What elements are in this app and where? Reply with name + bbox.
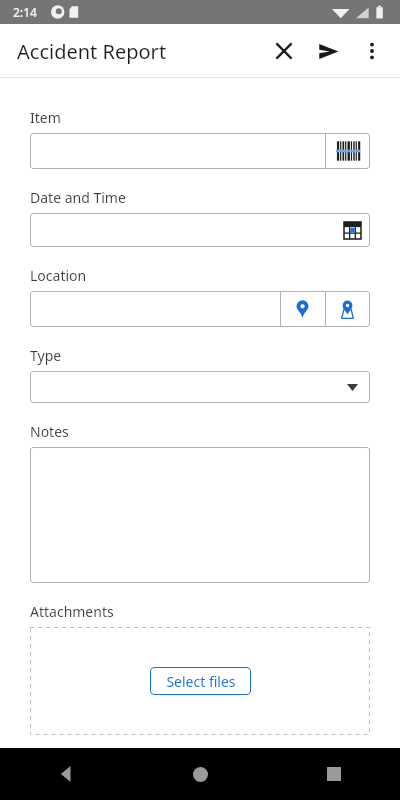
button[interactable]: Scan barcode	[325, 133, 370, 169]
staticText: Attachments	[30, 602, 114, 621]
button[interactable]	[30, 133, 325, 169]
staticText: Type	[30, 346, 62, 365]
button[interactable]: Send	[306, 29, 350, 73]
staticText: Date and Time	[30, 188, 126, 207]
staticText: Select files	[166, 672, 236, 691]
staticText: 2:14	[13, 4, 37, 20]
button[interactable]: Select files	[150, 667, 251, 695]
button[interactable]: Pick date and time	[30, 213, 370, 247]
staticText: Item	[30, 108, 61, 127]
button[interactable]: Home	[134, 748, 267, 800]
button[interactable]	[30, 291, 280, 327]
staticText: Notes	[30, 422, 69, 441]
button[interactable]: Back	[0, 748, 134, 800]
button[interactable]: Current location	[280, 291, 325, 327]
button[interactable]	[30, 371, 370, 403]
button[interactable]: Pick date and time	[343, 221, 361, 239]
button[interactable]: More options	[350, 29, 394, 73]
staticText: Location	[30, 266, 87, 285]
button[interactable]	[30, 447, 370, 583]
button[interactable]: Pick location on map	[325, 291, 370, 327]
button[interactable]: Close	[262, 29, 306, 73]
staticText: Accident Report	[17, 38, 167, 65]
button[interactable]: Recent apps	[267, 748, 400, 800]
